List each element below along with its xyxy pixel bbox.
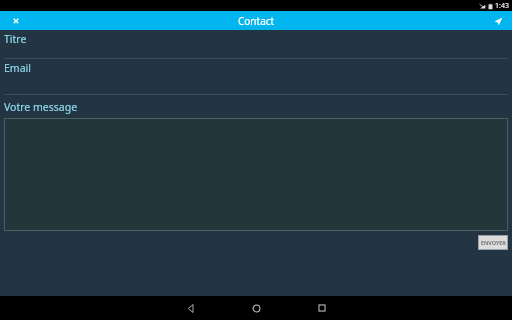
button[interactable]: ENVOYER <box>478 235 508 250</box>
staticText: Titre <box>4 32 27 46</box>
button[interactable]: Home <box>234 296 278 320</box>
staticText: Votre message <box>4 100 78 114</box>
staticText: Email <box>4 61 31 75</box>
button[interactable]: Email <box>0 59 512 95</box>
button[interactable]: Send <box>490 13 506 29</box>
button[interactable]: Titre <box>0 30 512 59</box>
staticText: ENVOYER <box>481 239 506 246</box>
button[interactable]: Close <box>9 14 23 28</box>
staticText: 1:43 <box>495 1 509 11</box>
staticText: Contact <box>238 14 275 28</box>
button[interactable]: Back <box>168 296 212 320</box>
button[interactable] <box>4 118 508 231</box>
button[interactable]: Recent apps <box>300 296 344 320</box>
button[interactable]: Votre message <box>0 95 512 118</box>
